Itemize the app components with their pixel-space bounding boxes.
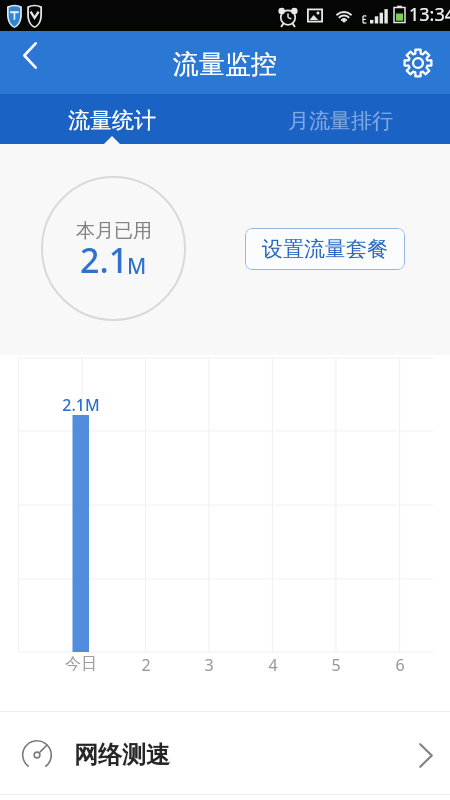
staticText: 今日 [65,654,97,674]
staticText: 流量统计 [68,107,156,135]
button[interactable]: 网络测速 [0,712,450,794]
staticText: 2.1 [80,237,129,283]
staticText: M [127,252,147,281]
staticText: 流量监控 [173,48,277,81]
staticText: 2 [141,654,151,676]
button[interactable]: Settings [394,39,442,87]
button[interactable]: 流量统计 [0,94,224,144]
button[interactable]: 月流量排行 [224,94,450,144]
staticText: 网络测速 [74,740,170,770]
staticText: 13:34 [409,2,450,27]
staticText: 3 [204,654,214,676]
staticText: 6 [395,654,405,676]
staticText: 月流量排行 [288,108,393,134]
button[interactable]: Back [7,31,55,79]
staticText: 4 [268,654,278,676]
staticText: 2.1M [62,394,100,416]
staticText: 本月已用 [76,219,152,243]
staticText: 5 [331,654,341,676]
button[interactable]: 设置流量套餐 [245,228,405,270]
staticText: 设置流量套餐 [262,236,388,262]
